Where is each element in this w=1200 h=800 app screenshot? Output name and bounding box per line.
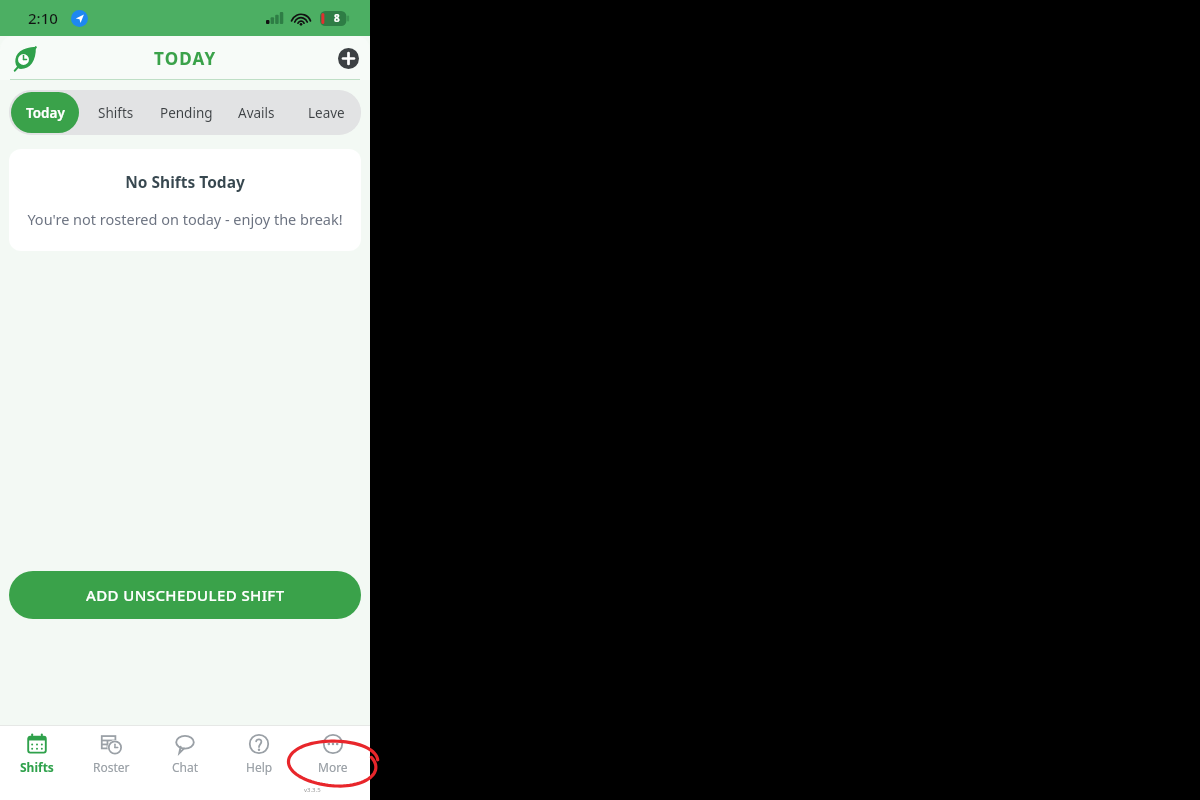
staticText: 8 — [334, 11, 340, 25]
button[interactable]: ADD UNSCHEDULED SHIFT — [9, 571, 361, 619]
staticText: 2:10 — [28, 8, 58, 28]
button[interactable]: Pending — [153, 92, 219, 133]
staticText: TODAY — [154, 47, 217, 70]
button[interactable]: Chat — [148, 733, 222, 800]
staticText: Avails — [238, 104, 275, 122]
staticText: v3.3.5 — [304, 786, 321, 794]
staticText: Chat — [172, 759, 199, 775]
button[interactable]: Shifts — [0, 733, 74, 800]
staticText: Roster — [93, 759, 130, 775]
staticText: No Shifts Today — [125, 171, 245, 192]
button[interactable]: More — [296, 733, 370, 800]
button[interactable]: Help — [222, 733, 296, 800]
button[interactable]: Roster — [74, 733, 148, 800]
staticText: ADD UNSCHEDULED SHIFT — [86, 585, 285, 605]
button[interactable]: Shifts — [83, 92, 149, 133]
button[interactable]: Avails — [223, 92, 289, 133]
staticText: You're not rostered on today - enjoy the… — [27, 209, 343, 229]
staticText: More — [318, 759, 348, 775]
staticText: Help — [246, 759, 273, 775]
staticText: Today — [26, 104, 65, 122]
button[interactable]: Today — [11, 92, 79, 133]
button[interactable]: Leave — [293, 92, 359, 133]
staticText: Shifts — [98, 104, 134, 122]
staticText: Leave — [308, 104, 345, 122]
button[interactable]: No Shifts Today — [9, 149, 361, 251]
staticText: Pending — [160, 104, 213, 122]
staticText: Shifts — [20, 759, 54, 775]
button[interactable]: Tanda logo — [10, 43, 40, 73]
button[interactable]: Add — [338, 48, 359, 69]
